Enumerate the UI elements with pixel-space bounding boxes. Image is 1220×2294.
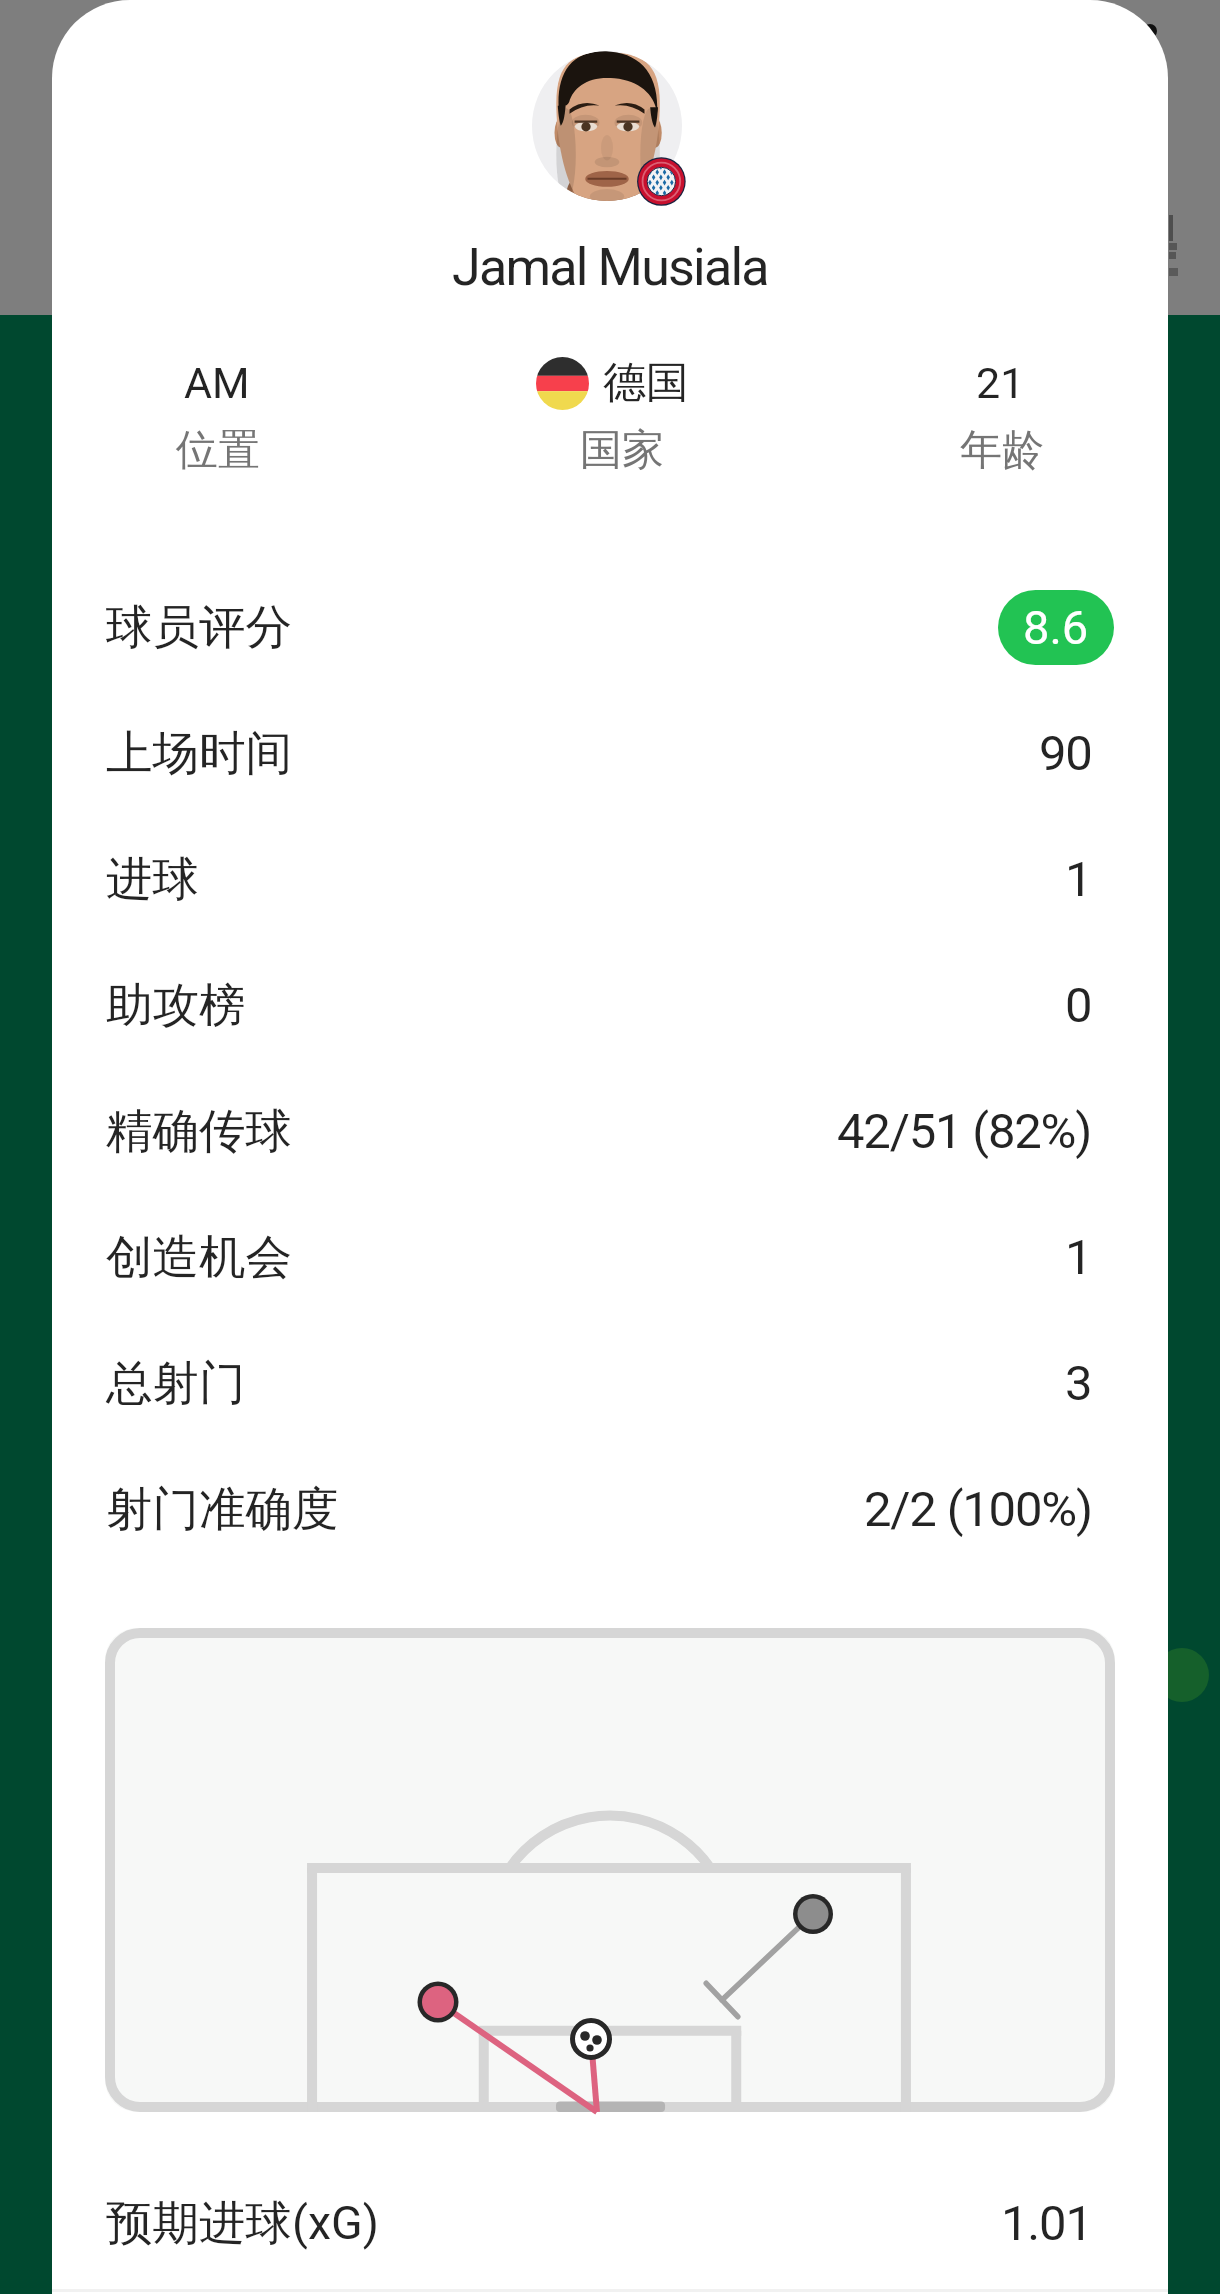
staticText: 1 — [1065, 851, 1092, 908]
staticText: 射门准确度 — [106, 1480, 339, 1539]
staticText: 8.6 — [1023, 600, 1089, 655]
button[interactable]: 球员评分 — [52, 564, 1168, 690]
staticText: 21 — [976, 358, 1025, 408]
staticText: 上场时间 — [106, 724, 292, 783]
staticText: 预期进球(xG) — [106, 2194, 379, 2253]
staticText: 德国 — [603, 356, 689, 410]
staticText: 1 — [1065, 1229, 1092, 1286]
staticText: 总射门 — [106, 1354, 246, 1413]
button[interactable]: 精确传球 — [52, 1068, 1168, 1194]
staticText: 3 — [1065, 1355, 1092, 1412]
button[interactable]: 德国 — [422, 354, 802, 484]
button[interactable]: 21 — [810, 354, 1168, 484]
button[interactable]: 助攻榜 — [52, 942, 1168, 1068]
staticText: AM — [184, 358, 250, 408]
staticText: 国家 — [580, 424, 664, 477]
staticText: 2/2 (100%) — [864, 1481, 1092, 1538]
staticText: 42/51 (82%) — [837, 1103, 1092, 1160]
staticText: Jamal Musiala — [452, 237, 768, 298]
staticText: 进球 — [106, 850, 199, 909]
staticText: 90 — [1039, 725, 1092, 782]
button[interactable]: 射门准确度 — [52, 1446, 1168, 1572]
button[interactable]: 创造机会 — [52, 1194, 1168, 1320]
staticText: 0 — [1065, 977, 1092, 1034]
button[interactable]: Jamal Musiala photo — [517, 36, 697, 216]
other: Shot map — [105, 1628, 1115, 2112]
staticText: 创造机会 — [106, 1228, 292, 1287]
staticText: 年龄 — [960, 424, 1044, 477]
staticText: 球员评分 — [106, 598, 292, 657]
button[interactable]: 进球 — [52, 816, 1168, 942]
button[interactable]: AM — [52, 354, 407, 484]
button[interactable]: 预期进球(xG) — [52, 2160, 1168, 2286]
staticText: 位置 — [176, 424, 260, 477]
staticText: 助攻榜 — [106, 976, 246, 1035]
staticText: 精确传球 — [106, 1102, 292, 1161]
button[interactable]: 上场时间 — [52, 690, 1168, 816]
button[interactable]: 总射门 — [52, 1320, 1168, 1446]
staticText: 1.01 — [1001, 2195, 1092, 2252]
